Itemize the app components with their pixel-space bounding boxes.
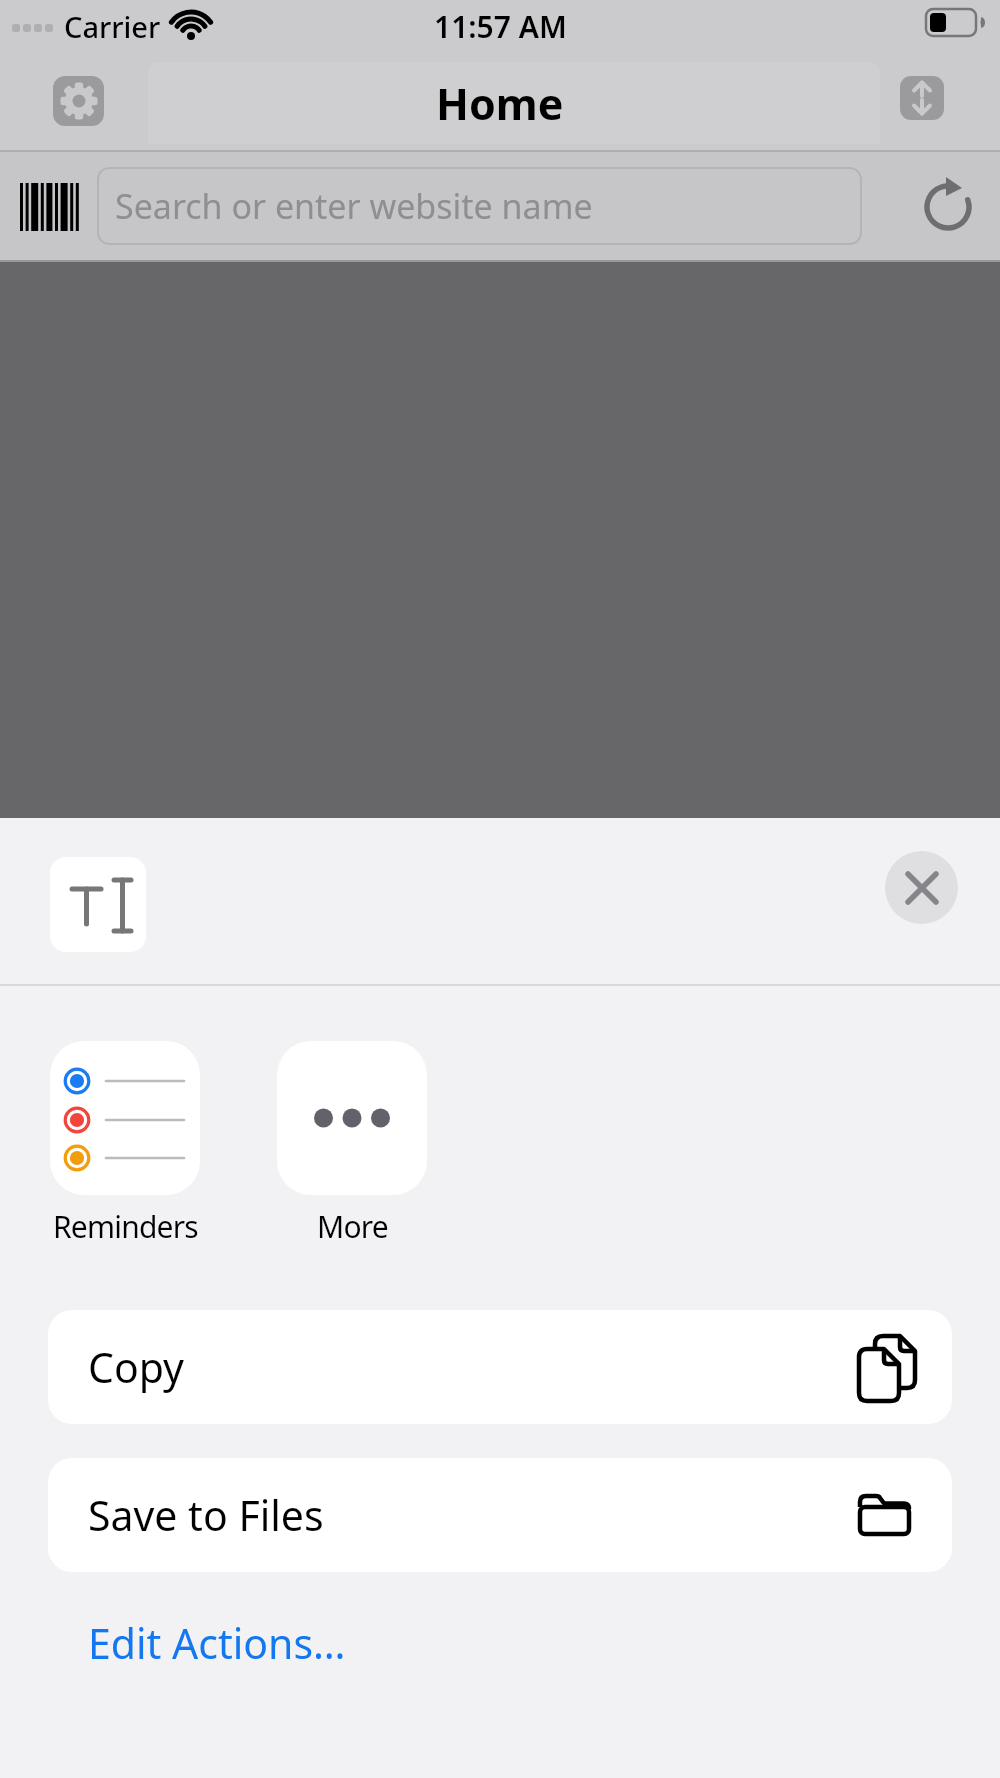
staticText: Copy xyxy=(88,1339,185,1395)
button[interactable]: Edit Actions… xyxy=(88,1615,346,1671)
staticText: Reminders xyxy=(53,1206,198,1247)
staticText: 11:57 AM xyxy=(434,6,567,47)
button[interactable] xyxy=(900,76,944,120)
button[interactable] xyxy=(50,1041,200,1195)
button[interactable] xyxy=(920,177,976,233)
button[interactable] xyxy=(277,1041,427,1195)
button[interactable] xyxy=(885,851,958,924)
staticText: More xyxy=(317,1206,388,1247)
staticText: Save to Files xyxy=(88,1487,324,1543)
staticText: Home xyxy=(436,74,564,133)
button[interactable]: Search or enter website name xyxy=(97,167,862,245)
staticText: Search or enter website name xyxy=(115,183,593,229)
button[interactable]: Save to Files xyxy=(48,1458,952,1572)
button[interactable]: Copy xyxy=(48,1310,952,1424)
button[interactable] xyxy=(53,76,104,126)
staticText: Carrier xyxy=(64,7,161,46)
